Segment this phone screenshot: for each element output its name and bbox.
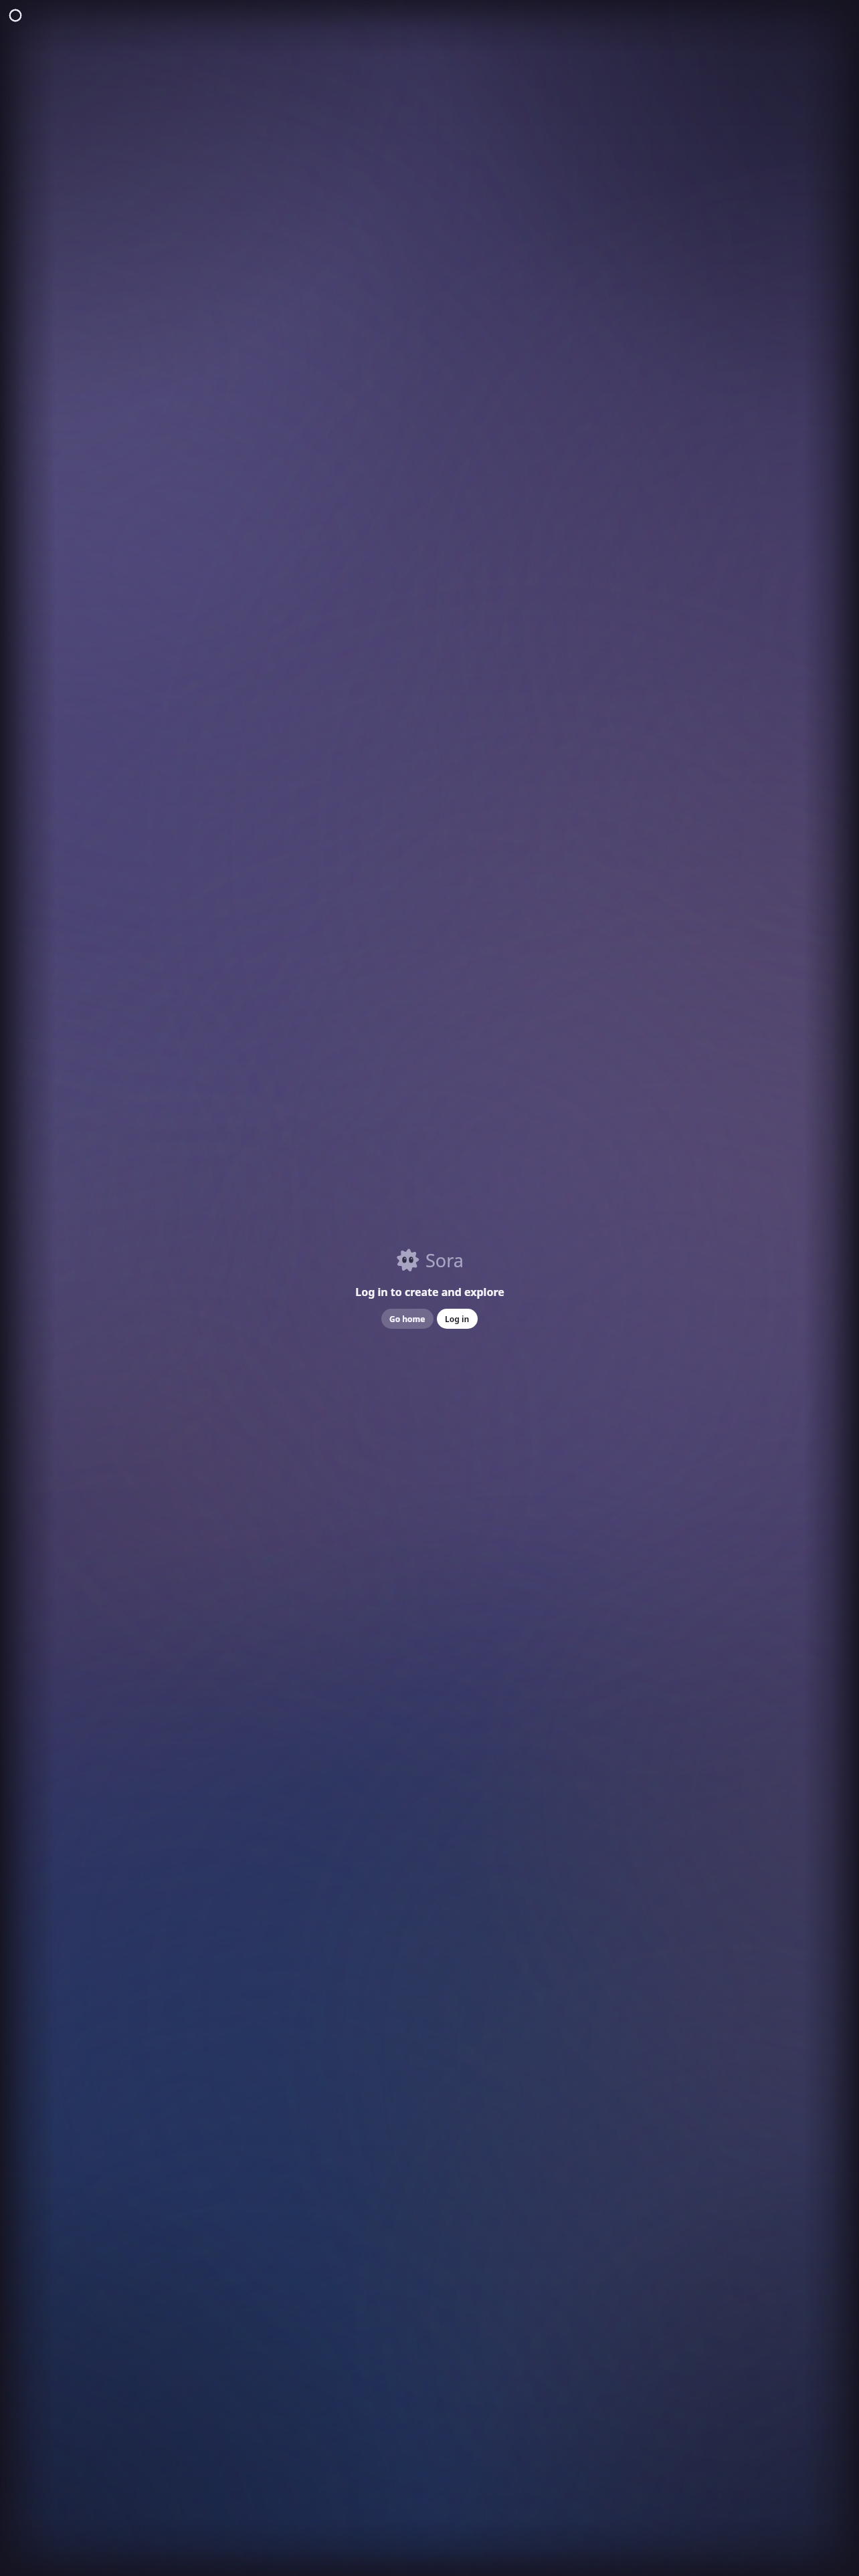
staticText: Sora — [425, 1248, 464, 1273]
button[interactable]: OpenAI — [8, 8, 23, 23]
button[interactable]: Log in — [437, 1309, 478, 1329]
staticText: Go home — [389, 1313, 425, 1324]
staticText: Log in to create and explore — [355, 1285, 504, 1299]
button[interactable]: Go home — [381, 1309, 434, 1329]
staticText: Log in — [445, 1313, 470, 1324]
